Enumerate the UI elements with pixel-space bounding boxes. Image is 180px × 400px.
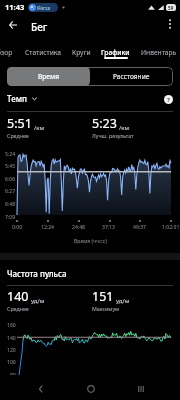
staticText: Темп (7, 93, 27, 104)
staticText: Обзор (0, 48, 13, 57)
button[interactable]: Back (29, 377, 53, 400)
staticText: Бег (31, 20, 48, 34)
staticText: Среднее (7, 305, 29, 312)
button[interactable]: More options (159, 13, 180, 35)
button[interactable]: Темп (7, 92, 38, 104)
button[interactable]: Инвентарь (137, 41, 180, 59)
staticText: ? (167, 96, 170, 104)
button[interactable]: Обзор (0, 41, 18, 59)
staticText: 59 (168, 5, 174, 11)
staticText: Частота пульса (7, 268, 67, 279)
staticText: 5:24 (5, 151, 16, 158)
staticText: /км (34, 123, 45, 131)
staticText: уд/м (31, 296, 45, 304)
button[interactable]: Круги (67, 41, 95, 59)
staticText: 5:51 (7, 115, 32, 132)
staticText: Инвентарь (141, 48, 177, 57)
staticText: 80 (10, 372, 16, 379)
staticText: 7:09 (5, 214, 16, 221)
staticText: 160 (7, 322, 16, 329)
staticText: 140 (7, 335, 16, 342)
staticText: 6:27 (5, 188, 16, 195)
staticText: 49:37 (133, 224, 147, 231)
staticText: 1:02:01 (162, 224, 180, 231)
staticText: Время (38, 72, 60, 81)
staticText: 140 (7, 288, 29, 305)
staticText: 11:43 (5, 2, 25, 12)
staticText: /км (119, 123, 130, 131)
staticText: iForza (37, 5, 50, 11)
staticText: Круги (72, 48, 91, 57)
staticText: Лучш. результат (92, 132, 134, 139)
staticText: 6:48 (5, 201, 16, 208)
button[interactable]: Расстояние (90, 67, 173, 86)
button[interactable]: Back (2, 14, 24, 36)
button[interactable]: Время (7, 67, 90, 86)
staticText: 12:24 (41, 224, 55, 231)
staticText: 24:48 (72, 224, 86, 231)
staticText: Расстояние (113, 72, 150, 81)
staticText: 151 (92, 288, 114, 305)
staticText: Среднее (7, 132, 29, 139)
staticText: 0:00 (12, 224, 23, 231)
staticText: уд/м (116, 296, 130, 304)
staticText: Статистика (25, 48, 61, 57)
staticText: 5:45 (5, 163, 16, 170)
staticText: 100 (7, 359, 16, 366)
staticText: 5:23 (92, 115, 117, 132)
staticText: Максимум (92, 305, 120, 312)
button[interactable]: Статистика (19, 41, 66, 59)
button[interactable]: Home (79, 377, 103, 400)
button[interactable]: Info (164, 95, 173, 104)
button[interactable]: Графики (98, 41, 133, 59)
button[interactable]: Recent apps (129, 377, 153, 400)
staticText: Графики (101, 48, 130, 57)
staticText: 6:06 (5, 176, 16, 183)
staticText: Время (чч:сс) (74, 238, 107, 245)
staticText: 120 (7, 347, 16, 354)
staticText: 37:13 (102, 224, 116, 231)
